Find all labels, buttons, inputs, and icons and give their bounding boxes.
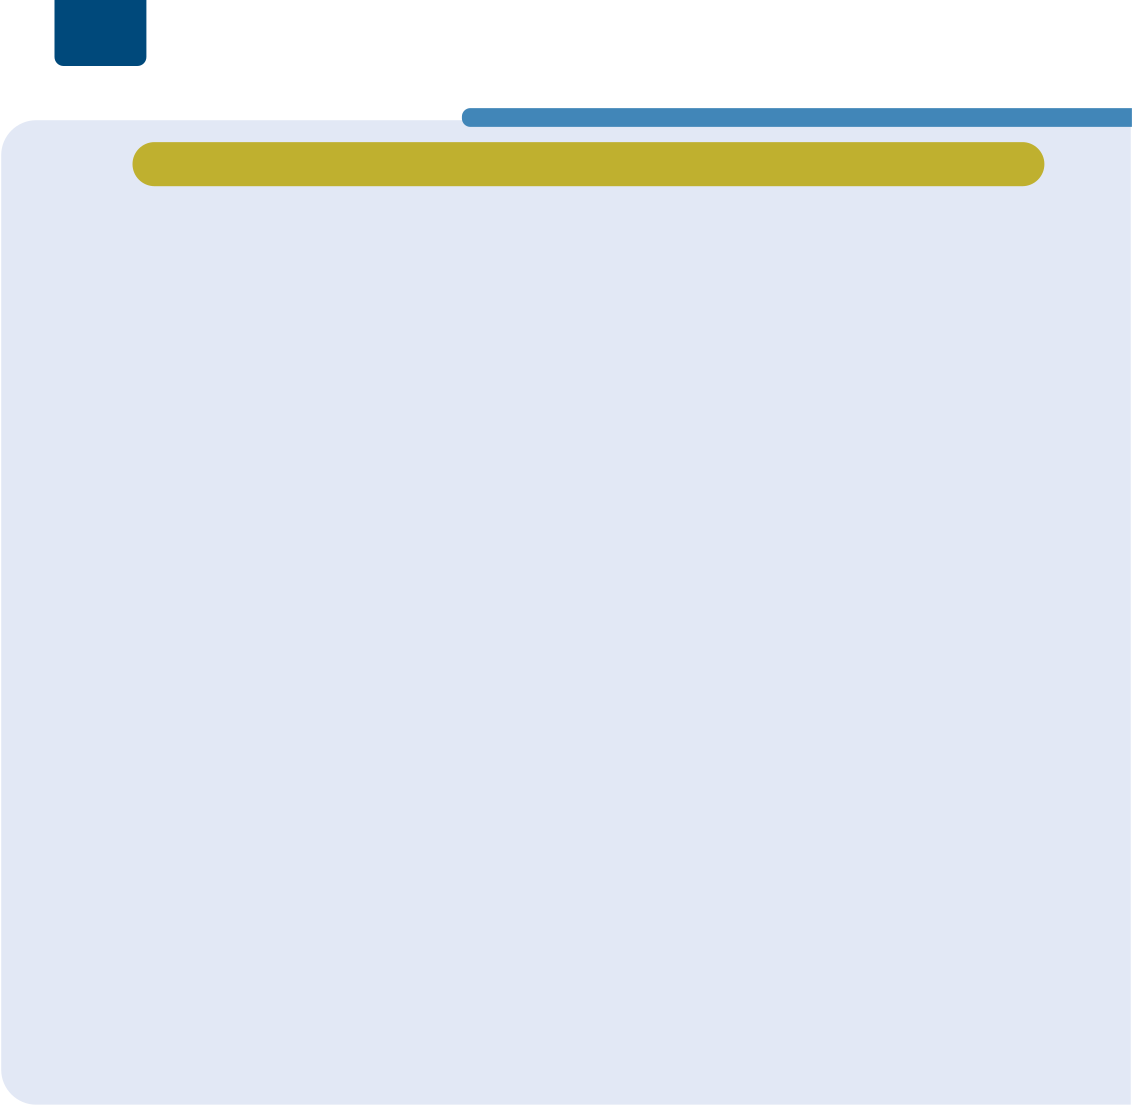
button[interactable]: Primary action bbox=[132, 142, 1044, 186]
button[interactable]: App badge bbox=[54, 0, 146, 66]
